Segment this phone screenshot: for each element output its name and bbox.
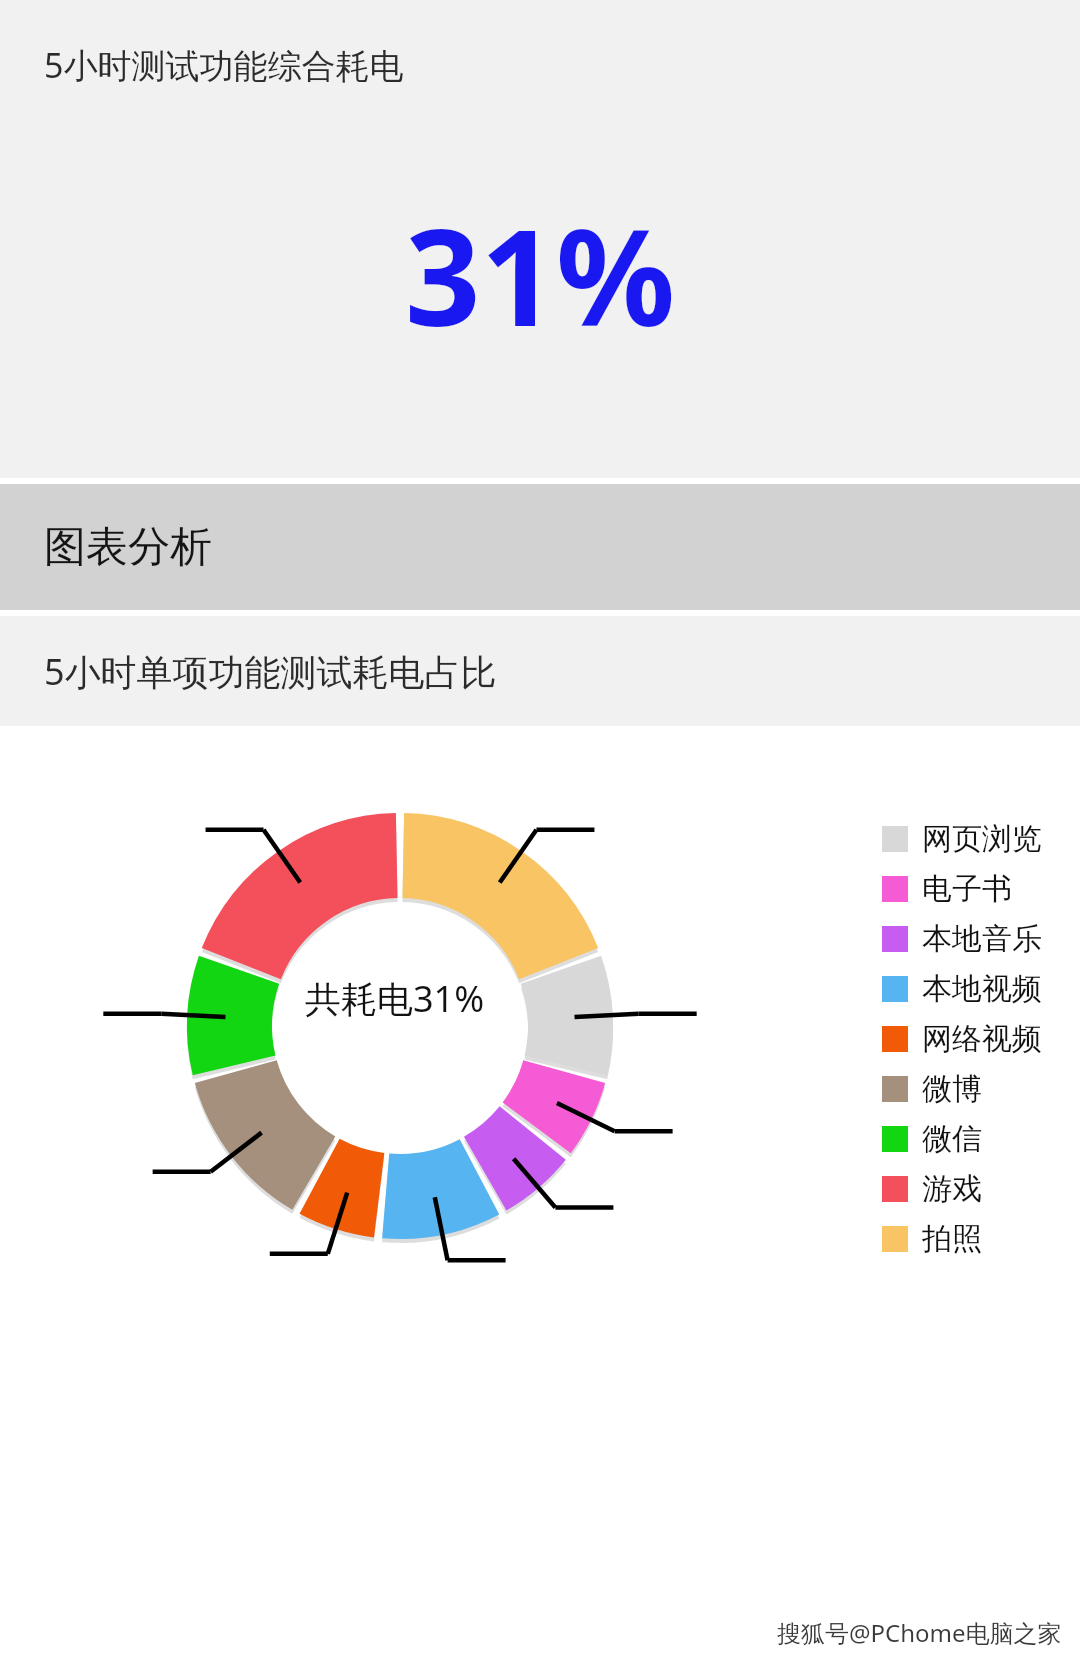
button[interactable]: 游戏	[882, 1170, 982, 1208]
button[interactable]: 微博	[882, 1070, 982, 1108]
other: 耗电占比环形图	[0, 726, 1080, 1669]
button[interactable]: 图表分析	[0, 484, 1080, 610]
button[interactable]: 5小时单项功能测试耗电占比	[0, 616, 1080, 726]
staticText: 拍照	[922, 1220, 982, 1258]
staticText: 电子书	[922, 870, 1012, 908]
button[interactable]: 网络视频	[882, 1020, 1042, 1058]
staticText: 5小时单项功能测试耗电占比	[44, 647, 497, 696]
staticText: 共耗电31%	[305, 974, 485, 1023]
staticText: 网页浏览	[922, 820, 1042, 858]
button[interactable]: 网页浏览	[882, 820, 1042, 858]
button[interactable]: 本地视频	[882, 970, 1042, 1008]
staticText: 本地视频	[922, 970, 1042, 1008]
staticText: 搜狐号@PChome电脑之家	[777, 1616, 1062, 1649]
staticText: 31%	[405, 185, 676, 365]
staticText: 5小时测试功能综合耗电	[44, 42, 404, 88]
button[interactable]: 电子书	[882, 870, 1012, 908]
staticText: 图表分析	[44, 521, 212, 574]
button[interactable]: 微信	[882, 1120, 982, 1158]
staticText: 本地音乐	[922, 920, 1042, 958]
staticText: 微信	[922, 1120, 982, 1158]
staticText: 微博	[922, 1070, 982, 1108]
button[interactable]: 本地音乐	[882, 920, 1042, 958]
button[interactable]: 拍照	[882, 1220, 982, 1258]
button[interactable]: 5小时测试功能综合耗电	[0, 0, 1080, 478]
staticText: 游戏	[922, 1170, 982, 1208]
staticText: 网络视频	[922, 1020, 1042, 1058]
